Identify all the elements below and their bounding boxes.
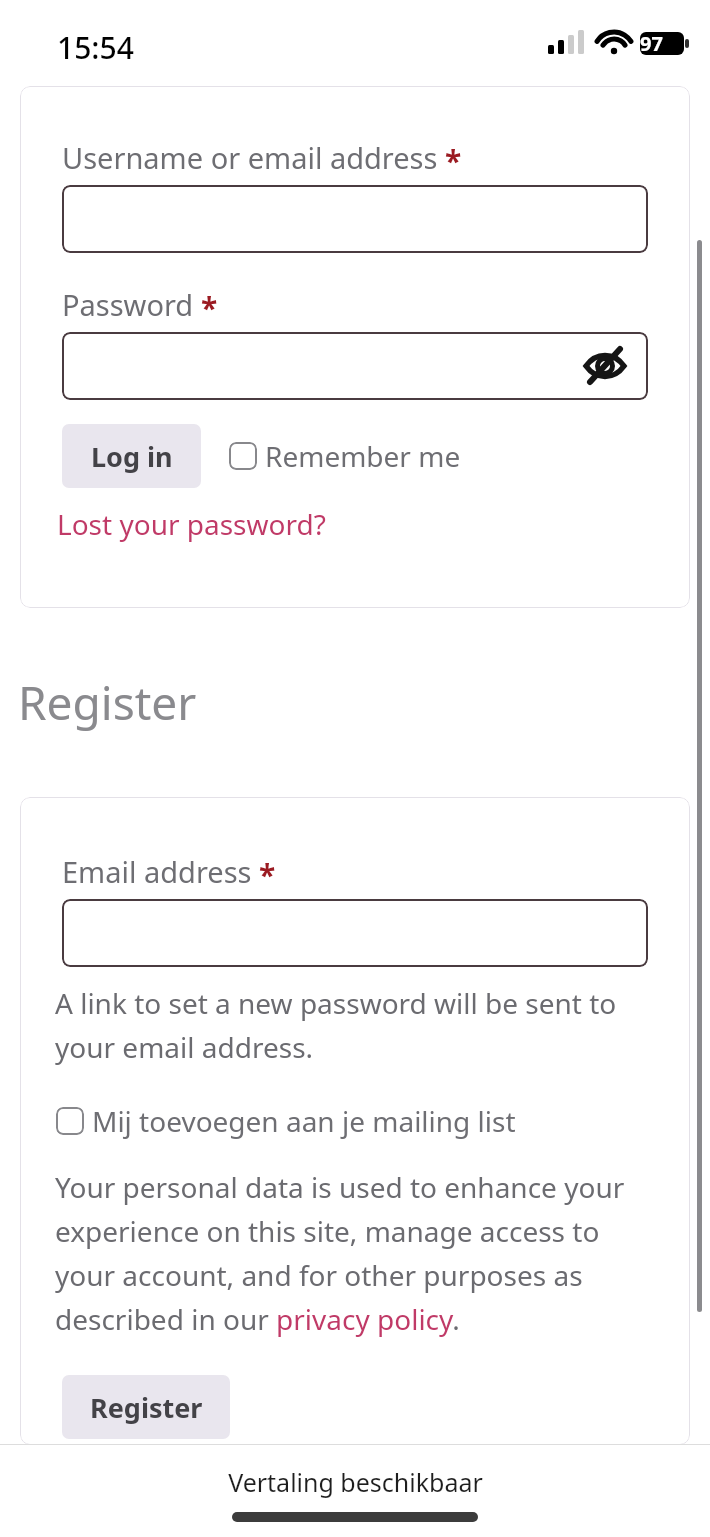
staticText: * <box>259 854 276 895</box>
staticText: Your personal data is used to enhance yo… <box>55 1168 627 1338</box>
staticText: Lost your password? <box>57 505 326 543</box>
button[interactable]: Remember me <box>229 434 461 478</box>
staticText: Password <box>62 285 194 324</box>
button[interactable] <box>62 332 648 400</box>
button[interactable] <box>62 899 648 967</box>
button[interactable]: Mij toevoegen aan je mailing list <box>56 1100 516 1142</box>
staticText: Remember me <box>265 437 461 475</box>
button[interactable]: Register <box>62 1375 230 1439</box>
staticText: * <box>445 140 462 181</box>
staticText: Register <box>18 671 197 734</box>
staticText: * <box>201 287 218 328</box>
staticText: Vertaling beschikbaar <box>228 1465 483 1499</box>
staticText: 15:54 <box>57 27 134 68</box>
staticText: Mij toevoegen aan je mailing list <box>92 1102 516 1140</box>
button[interactable]: Lost your password? <box>57 505 326 543</box>
button[interactable] <box>62 185 648 253</box>
staticText: 97 <box>640 30 663 57</box>
staticText: Email address <box>62 852 252 891</box>
staticText: Register <box>90 1389 203 1426</box>
button[interactable]: Log in <box>62 424 201 488</box>
staticText: Username or email address <box>62 138 438 177</box>
staticText: A link to set a new password will be sen… <box>55 984 655 1066</box>
button[interactable]: Show password <box>578 340 632 392</box>
staticText: Log in <box>91 438 173 475</box>
